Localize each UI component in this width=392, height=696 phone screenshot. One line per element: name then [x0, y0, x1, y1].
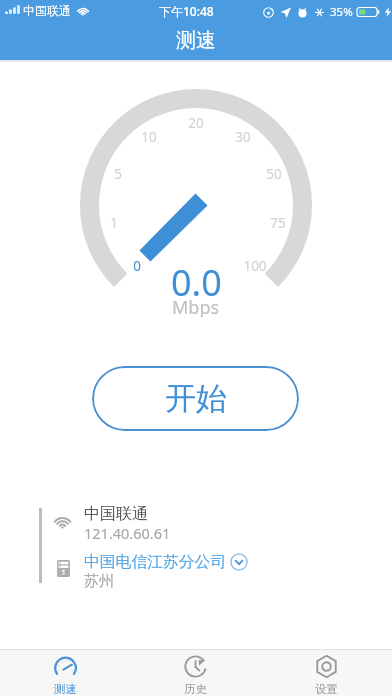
staticText: 100	[243, 257, 267, 275]
staticText: 20	[188, 114, 204, 132]
staticText: 1	[110, 214, 118, 232]
staticText: 设置	[315, 682, 338, 696]
staticText: 开始	[165, 379, 227, 418]
staticText: 30	[235, 128, 251, 146]
staticText: 下午10:48	[159, 3, 214, 19]
staticText: 0.0	[171, 258, 222, 298]
staticText: 测速	[176, 28, 216, 53]
staticText: 0	[133, 257, 141, 275]
button[interactable]: 测速	[0, 650, 130, 696]
button[interactable]: 设置	[261, 650, 392, 696]
staticText: 5	[114, 165, 122, 183]
staticText: 中国联通	[84, 504, 148, 524]
staticText: 50	[266, 165, 282, 183]
staticText: 121.40.60.61	[84, 523, 171, 543]
staticText: 10	[141, 128, 157, 146]
staticText: 历史	[184, 682, 207, 696]
staticText: 测速	[54, 682, 77, 696]
button[interactable]: 开始	[92, 366, 299, 431]
staticText: Mbps	[172, 295, 220, 317]
staticText: 苏州	[84, 572, 114, 591]
button[interactable]: 历史	[130, 650, 261, 696]
staticText: 中国电信江苏分公司	[84, 552, 227, 572]
button[interactable]: Choose server	[229, 552, 248, 571]
staticText: 35%	[330, 4, 353, 20]
staticText: 中国联通	[23, 3, 71, 18]
staticText: 75	[270, 214, 286, 232]
